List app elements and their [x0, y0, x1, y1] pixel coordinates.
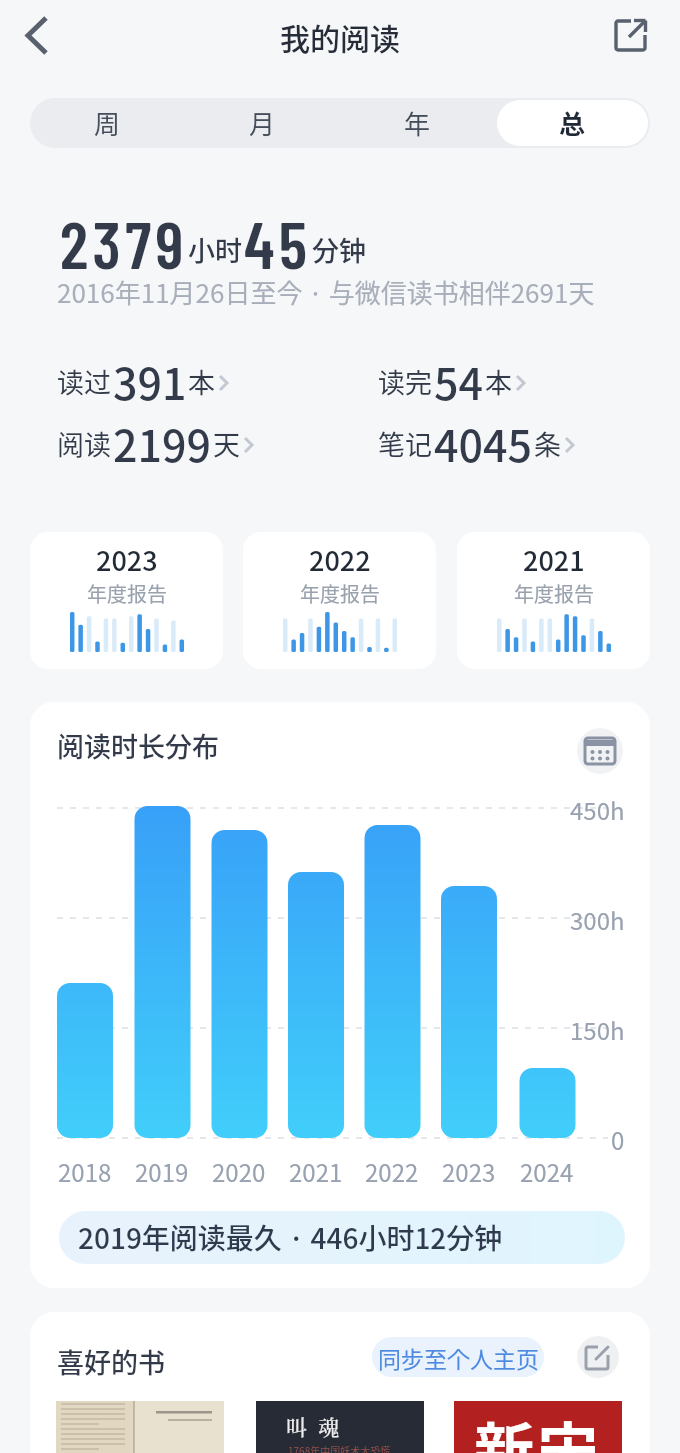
button[interactable]: 读完 [378, 350, 527, 408]
staticText: 1768年中国妖术大恐慌 [288, 1443, 391, 1453]
staticText: 本 [485, 362, 512, 401]
button[interactable]: 同步至个人主页 [372, 1337, 544, 1377]
staticText: 4045 [434, 412, 533, 470]
button[interactable]: 读过 [57, 350, 230, 408]
button[interactable]: 2022 [243, 532, 436, 669]
staticText: 2019 [135, 1154, 189, 1186]
staticText: 45 [244, 203, 312, 279]
button[interactable] [56, 1401, 224, 1453]
staticText: 2199 [113, 412, 212, 470]
staticText: 读完 [378, 362, 432, 401]
staticText: 2019年阅读最久 · 446小时12分钟 [78, 1217, 503, 1258]
button[interactable]: 2019年阅读最久 · 446小时12分钟 [59, 1211, 625, 1264]
button[interactable]: 阅读 [57, 412, 255, 470]
staticText: 2021 [523, 540, 585, 579]
staticText: 2018 [58, 1154, 112, 1186]
staticText: 本 [188, 362, 215, 401]
button[interactable]: 2021 [457, 532, 650, 669]
staticText: 年 [404, 104, 431, 142]
staticText: 周 [94, 104, 121, 142]
button[interactable] [16, 8, 60, 64]
staticText: 喜好的书 [57, 1342, 165, 1381]
staticText: 月 [249, 104, 276, 142]
staticText: 391 [113, 350, 187, 408]
button[interactable] [577, 728, 623, 774]
button[interactable] [577, 1336, 619, 1378]
staticText: 小时 [188, 230, 242, 269]
staticText: 总 [559, 104, 586, 142]
button[interactable]: 年 [342, 100, 493, 146]
staticText: 2023 [442, 1154, 496, 1186]
staticText: 同步至个人主页 [378, 1341, 539, 1374]
staticText: 分钟 [312, 230, 366, 269]
staticText: 条 [534, 424, 561, 463]
button[interactable]: 月 [187, 100, 338, 146]
staticText: 年度报告 [87, 579, 167, 608]
staticText: 2020 [212, 1154, 266, 1186]
staticText: 54 [434, 350, 484, 408]
staticText: 阅读时长分布 [57, 726, 219, 765]
staticText: 2022 [365, 1154, 419, 1186]
staticText: 天 [213, 424, 240, 463]
button[interactable]: 叫 魂 [256, 1401, 424, 1453]
button[interactable]: 2023 [30, 532, 223, 669]
staticText: 2379 [60, 203, 188, 279]
staticText: 读过 [57, 362, 111, 401]
staticText: 2022 [309, 540, 371, 579]
staticText: 新宋 [474, 1403, 602, 1453]
staticText: 2023 [96, 540, 158, 579]
staticText: 300h [570, 902, 625, 934]
staticText: 2024 [520, 1154, 574, 1186]
staticText: 笔记 [378, 424, 432, 463]
staticText: 叫 魂 [286, 1411, 343, 1441]
staticText: 0 [611, 1122, 625, 1154]
staticText: 年度报告 [300, 579, 380, 608]
staticText: 150h [570, 1012, 625, 1044]
staticText: 阅读 [57, 424, 111, 463]
staticText: 我的阅读 [280, 15, 400, 58]
staticText: 450h [570, 792, 625, 824]
staticText: 2021 [289, 1154, 343, 1186]
staticText: 2016年11月26日至今 · 与微信读书相伴2691天 [57, 273, 595, 311]
button[interactable]: 总 [497, 100, 648, 146]
button[interactable]: 周 [32, 100, 183, 146]
button[interactable]: 笔记 [378, 412, 576, 470]
button[interactable] [604, 9, 656, 61]
button[interactable]: 新宋 [454, 1401, 622, 1453]
staticText: 年度报告 [514, 579, 594, 608]
